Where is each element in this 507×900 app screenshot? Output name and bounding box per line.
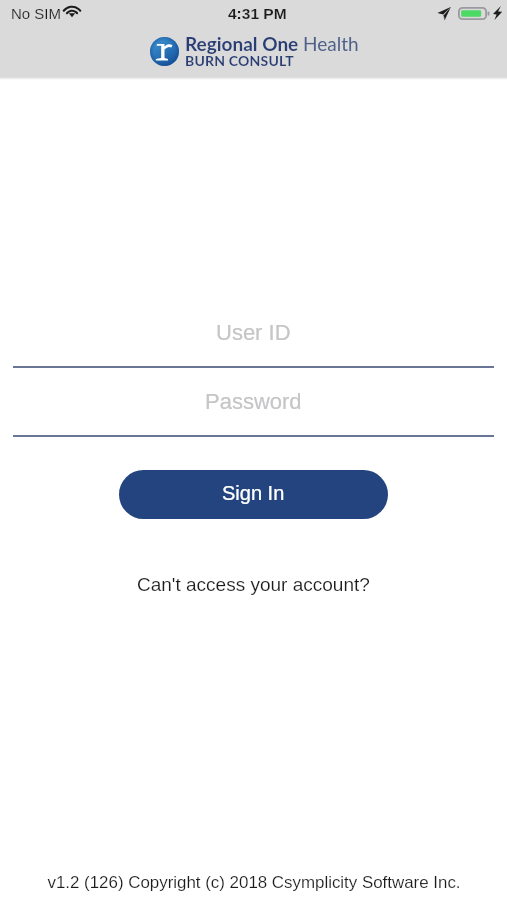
button[interactable]: Sign In [119, 470, 388, 519]
staticText: 4:31 PM [228, 5, 287, 22]
button[interactable]: Password [0, 379, 507, 423]
staticText: Health [303, 32, 359, 55]
button[interactable]: User ID [0, 310, 507, 354]
staticText: Can't access your account? [137, 574, 370, 595]
staticText: Sign In [222, 482, 285, 504]
staticText: No SIM [11, 5, 62, 22]
staticText: Password [205, 389, 302, 414]
staticText: Regional One [185, 32, 303, 55]
staticText: v1.2 (126) Copyright (c) 2018 Csymplicit… [47, 873, 461, 892]
staticText: BURN CONSULT [185, 52, 294, 69]
button[interactable]: Can't access your account? [127, 570, 380, 599]
staticText: User ID [216, 320, 291, 345]
